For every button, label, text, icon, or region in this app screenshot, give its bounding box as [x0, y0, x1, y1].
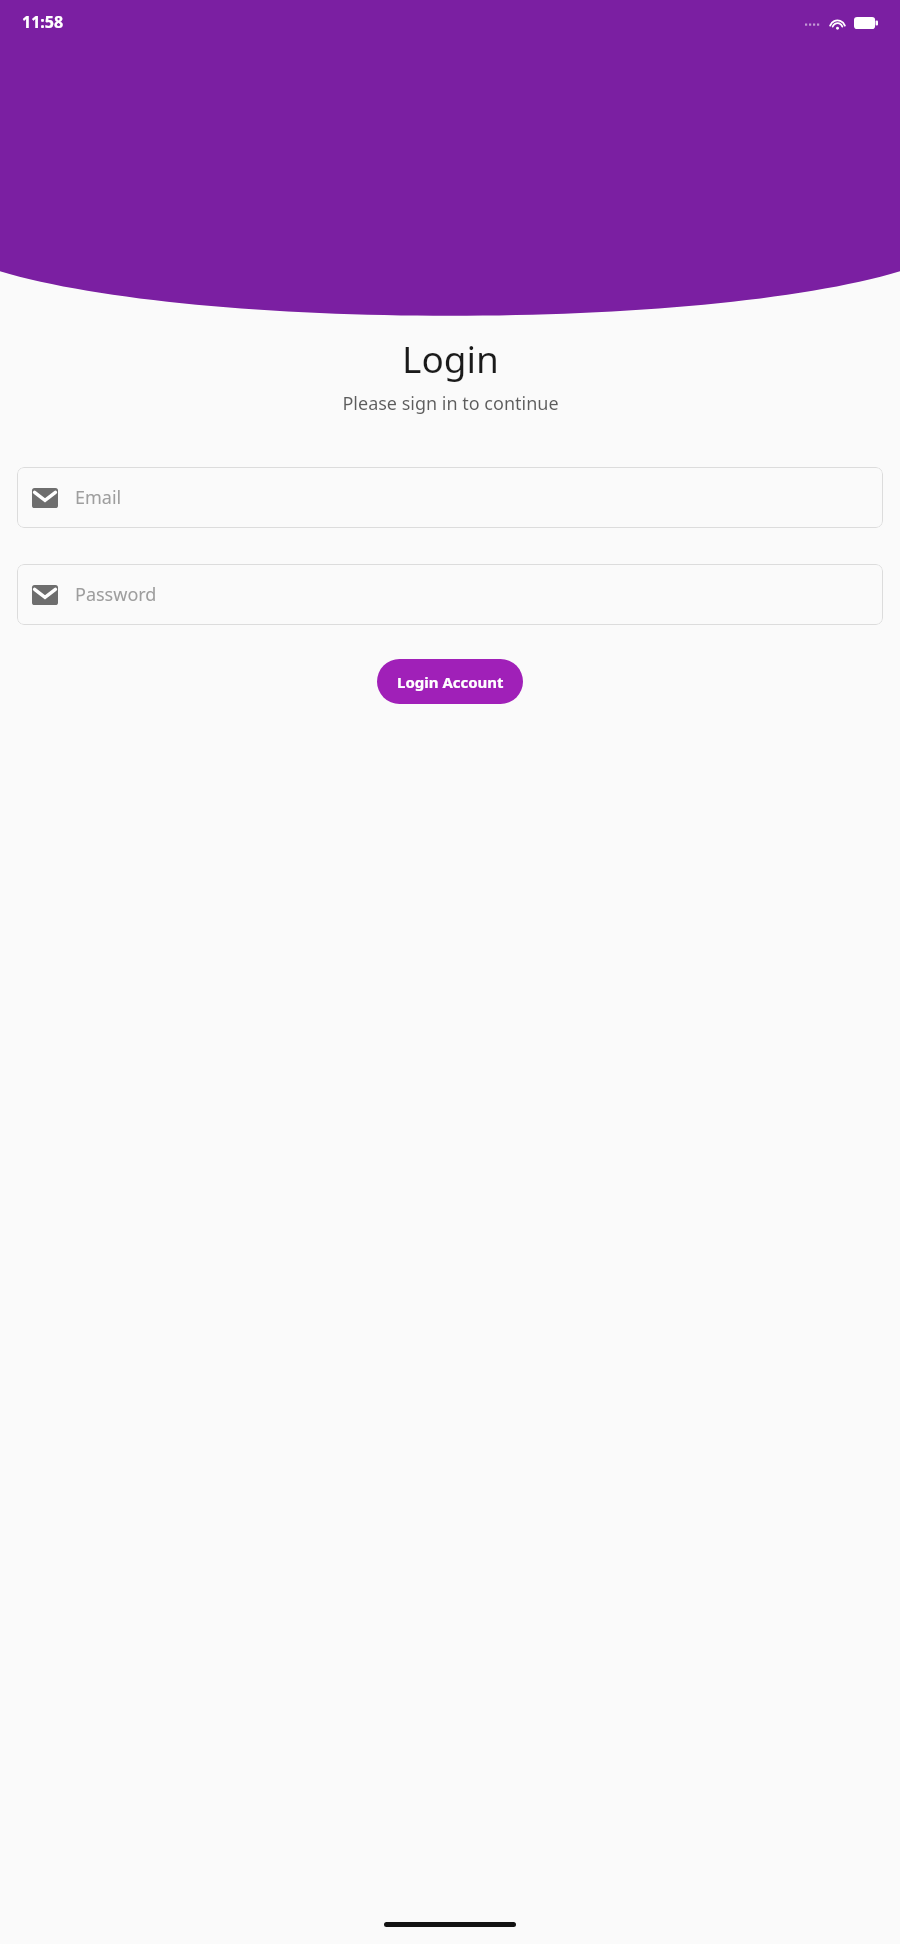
staticText: Please sign in to continue: [342, 391, 559, 416]
button[interactable]: Mail: [17, 467, 883, 528]
staticText: Login: [402, 333, 499, 383]
button[interactable]: Mail: [17, 564, 883, 625]
staticText: 11:58: [22, 11, 64, 33]
other: Mail: [32, 488, 58, 508]
staticText: Login Account: [397, 672, 504, 692]
staticText: Password: [75, 582, 157, 607]
staticText: Email: [75, 485, 122, 510]
button[interactable]: Login Account: [377, 659, 523, 704]
other: Mail: [32, 585, 58, 605]
